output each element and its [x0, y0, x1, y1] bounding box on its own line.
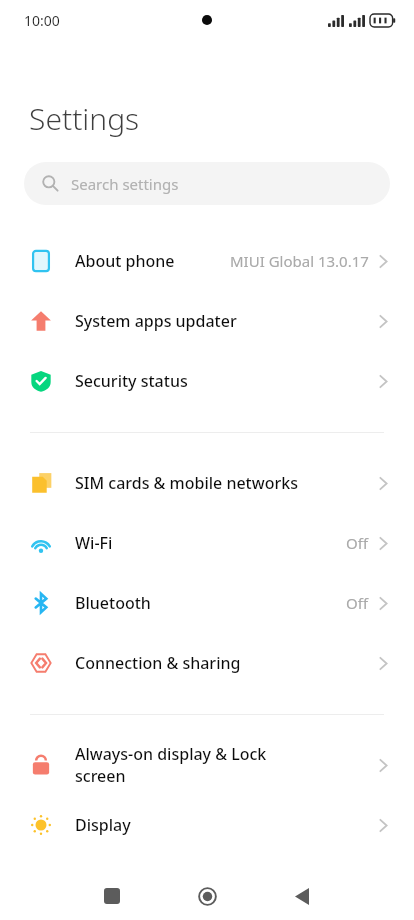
button[interactable]: Search settings	[24, 162, 390, 205]
staticText: Settings	[29, 98, 140, 139]
staticText: Always-on display & Lock screen	[75, 743, 379, 787]
button[interactable]: Home	[185, 874, 229, 918]
button[interactable]: Connection & sharing	[0, 633, 414, 693]
button[interactable]: Recents	[90, 874, 134, 918]
staticText: Off	[346, 533, 369, 553]
staticText: Bluetooth	[75, 592, 346, 614]
button[interactable]: Wi-Fi	[0, 513, 414, 573]
button[interactable]: About phone	[0, 231, 414, 291]
staticText: Search settings	[71, 174, 179, 194]
staticText: Display	[75, 814, 379, 836]
button[interactable]: Back	[280, 874, 324, 918]
staticText: Security status	[75, 370, 379, 392]
button[interactable]: Display	[0, 795, 414, 855]
staticText: About phone	[75, 250, 230, 272]
button[interactable]: System apps updater	[0, 291, 414, 351]
button[interactable]: SIM cards & mobile networks	[0, 453, 414, 513]
staticText: System apps updater	[75, 310, 379, 332]
staticText: Connection & sharing	[75, 652, 379, 674]
button[interactable]: Bluetooth	[0, 573, 414, 633]
button[interactable]: Security status	[0, 351, 414, 411]
staticText: 10:00	[24, 11, 60, 30]
button[interactable]: Always-on display & Lock screen	[0, 735, 414, 795]
staticText: Off	[346, 593, 369, 613]
staticText: MIUI Global 13.0.17	[230, 251, 369, 271]
staticText: SIM cards & mobile networks	[75, 472, 379, 494]
staticText: Wi-Fi	[75, 532, 346, 554]
